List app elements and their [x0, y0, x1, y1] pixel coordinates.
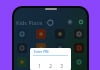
- button[interactable]: App 8: [74, 43, 84, 53]
- button[interactable]: 1: [35, 61, 44, 70]
- button[interactable]: App 7: [55, 43, 65, 53]
- button[interactable]: App 2: [36, 29, 46, 39]
- button[interactable]: App 4: [74, 29, 84, 39]
- button[interactable]: App 6: [36, 43, 46, 53]
- button[interactable]: 3: [57, 61, 66, 70]
- staticText: 3: [60, 63, 63, 69]
- button[interactable]: Search: [45, 18, 54, 27]
- button[interactable]: App 12: [74, 57, 84, 67]
- button[interactable]: App 10: [36, 57, 46, 67]
- staticText: 1: [38, 63, 41, 69]
- staticText: Enter PIN: [34, 50, 49, 54]
- button[interactable]: Settings: [77, 18, 85, 26]
- button[interactable]: 2: [46, 61, 55, 70]
- staticText: Kids Place: [16, 19, 43, 26]
- staticText: 2: [49, 63, 52, 69]
- button[interactable]: App 1: [17, 29, 27, 39]
- button[interactable]: App 5: [17, 43, 27, 53]
- button[interactable]: App 3: [55, 29, 65, 39]
- button[interactable]: App 9: [17, 57, 27, 67]
- button[interactable]: All apps: [66, 18, 74, 26]
- button[interactable]: App 11: [55, 57, 65, 67]
